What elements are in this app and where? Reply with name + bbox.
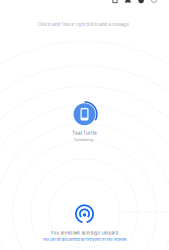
- button[interactable]: Battery: [138, 0, 143, 4]
- button[interactable]: Teal Turtle: [70, 100, 98, 142]
- button[interactable]: Wi-Fi: [125, 0, 130, 4]
- button[interactable]: Screen Mirroring: [112, 0, 117, 4]
- staticText: Teal Turtle: [72, 130, 97, 136]
- staticText: Click to send files or right click to se…: [37, 22, 128, 27]
- staticText: Transferring...: [73, 137, 95, 142]
- staticText: You can be discovered by everyone on thi…: [42, 237, 126, 242]
- button[interactable]: Control Centre: [151, 0, 156, 4]
- button[interactable]: You can be discovered by everyone on thi…: [42, 236, 126, 242]
- staticText: You are known as Indigo Leopard: [50, 230, 118, 236]
